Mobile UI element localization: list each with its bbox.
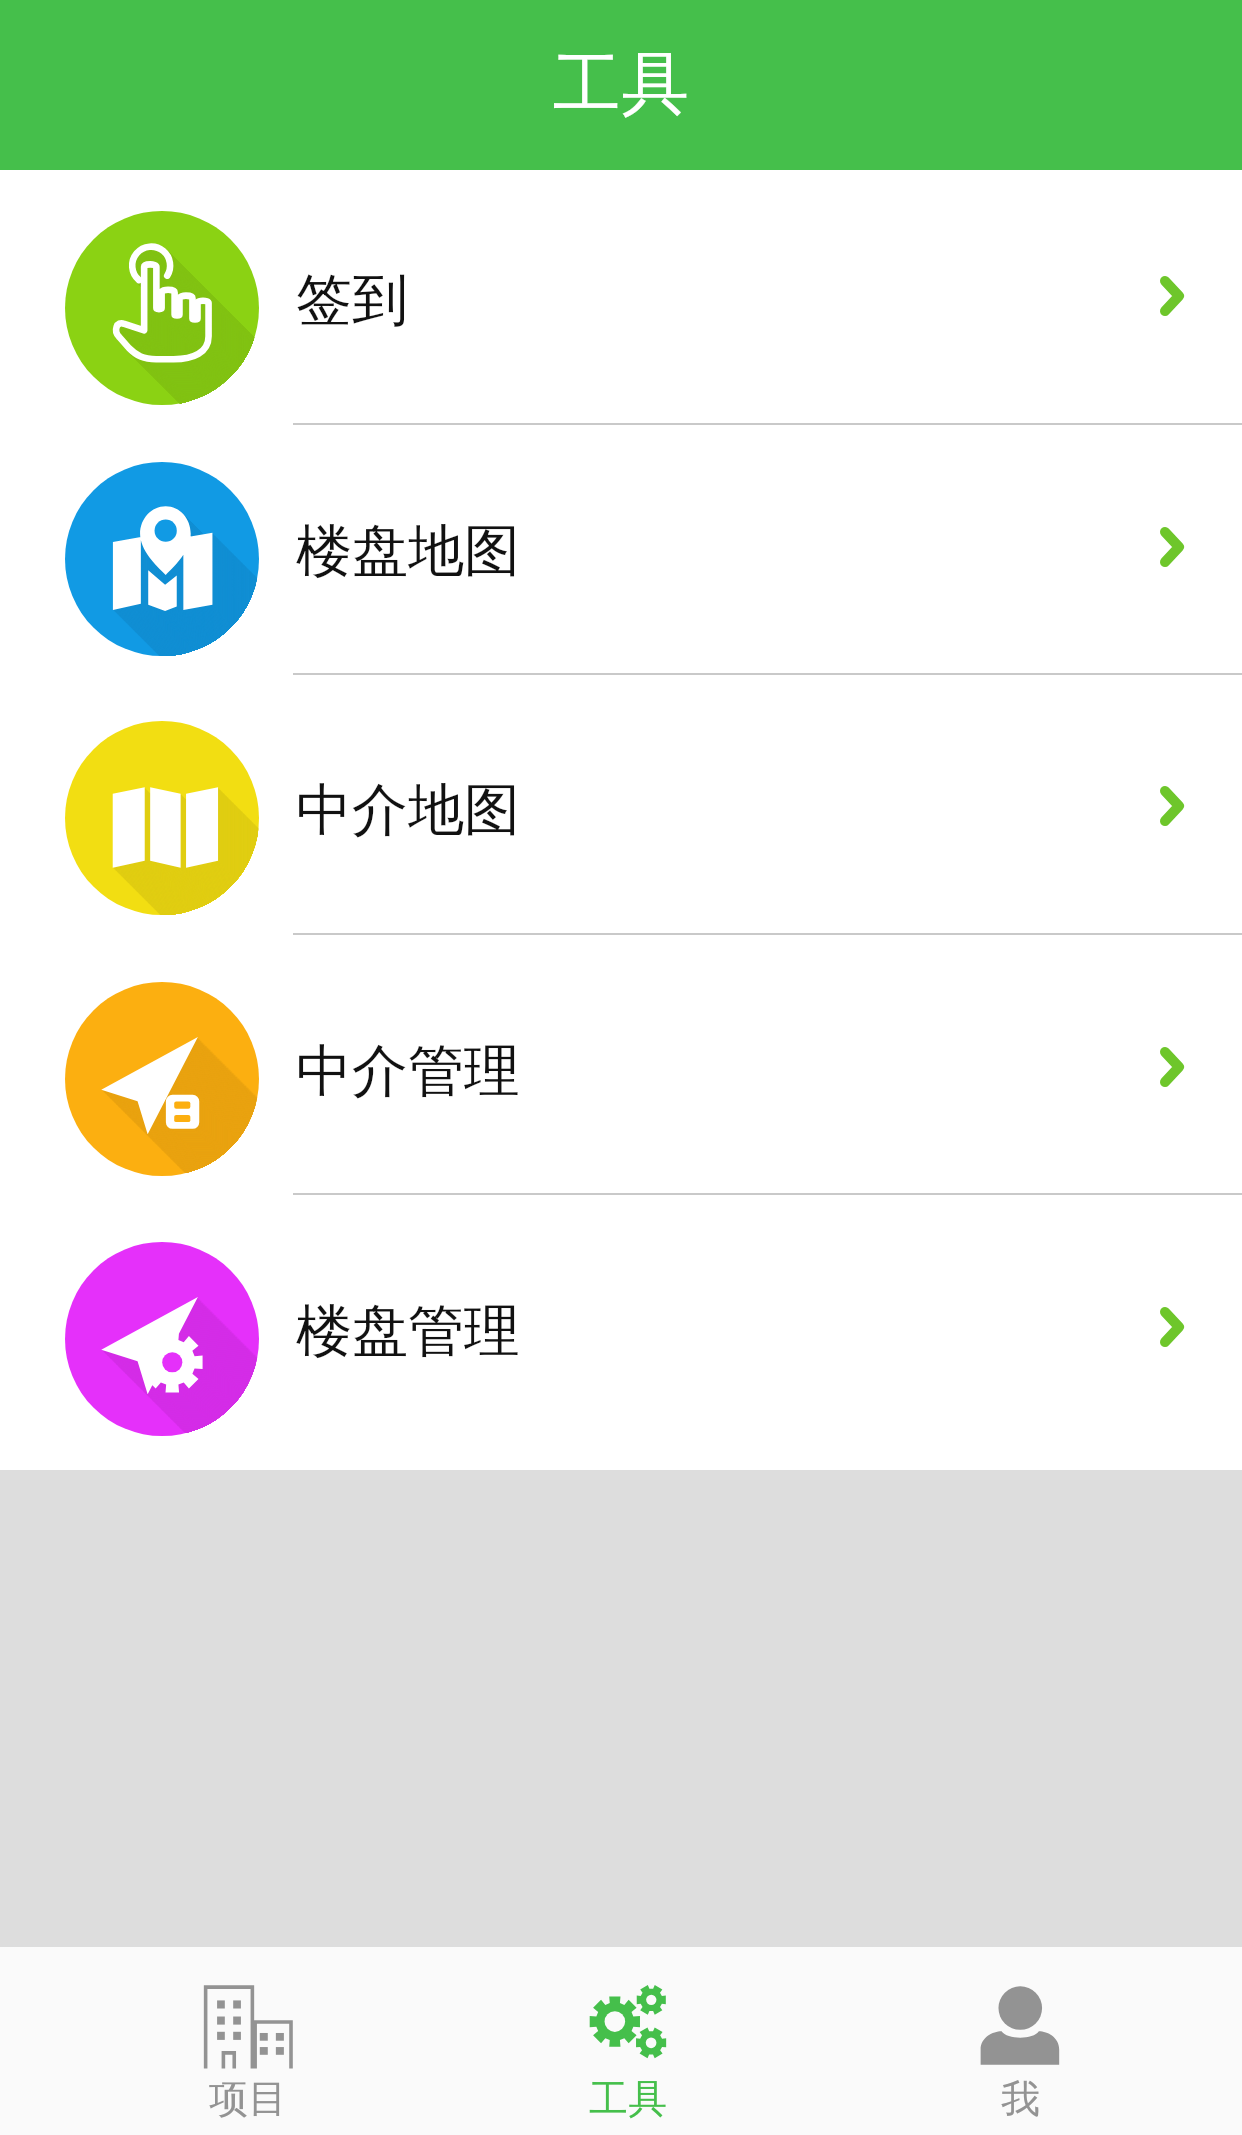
staticText: 项目 <box>209 2074 287 2123</box>
button[interactable]: 中介管理 <box>0 935 1242 1195</box>
staticText: 楼盘管理 <box>296 1296 520 1367</box>
staticText: 中介地图 <box>296 775 520 846</box>
staticText: 工具 <box>589 2074 667 2123</box>
button[interactable]: 项目 <box>148 1947 348 2135</box>
staticText: 楼盘地图 <box>296 516 520 587</box>
button[interactable]: 楼盘地图 <box>0 425 1242 675</box>
button[interactable]: 中介地图 <box>0 675 1242 935</box>
staticText: 我 <box>1001 2074 1040 2123</box>
button[interactable]: 楼盘管理 <box>0 1195 1242 1470</box>
button[interactable]: 工具 <box>528 1947 728 2135</box>
staticText: 中介管理 <box>296 1036 520 1107</box>
button[interactable]: 签到 <box>0 170 1242 425</box>
button[interactable]: 我 <box>920 1947 1120 2135</box>
staticText: 签到 <box>296 265 408 336</box>
staticText: 工具 <box>553 42 689 128</box>
